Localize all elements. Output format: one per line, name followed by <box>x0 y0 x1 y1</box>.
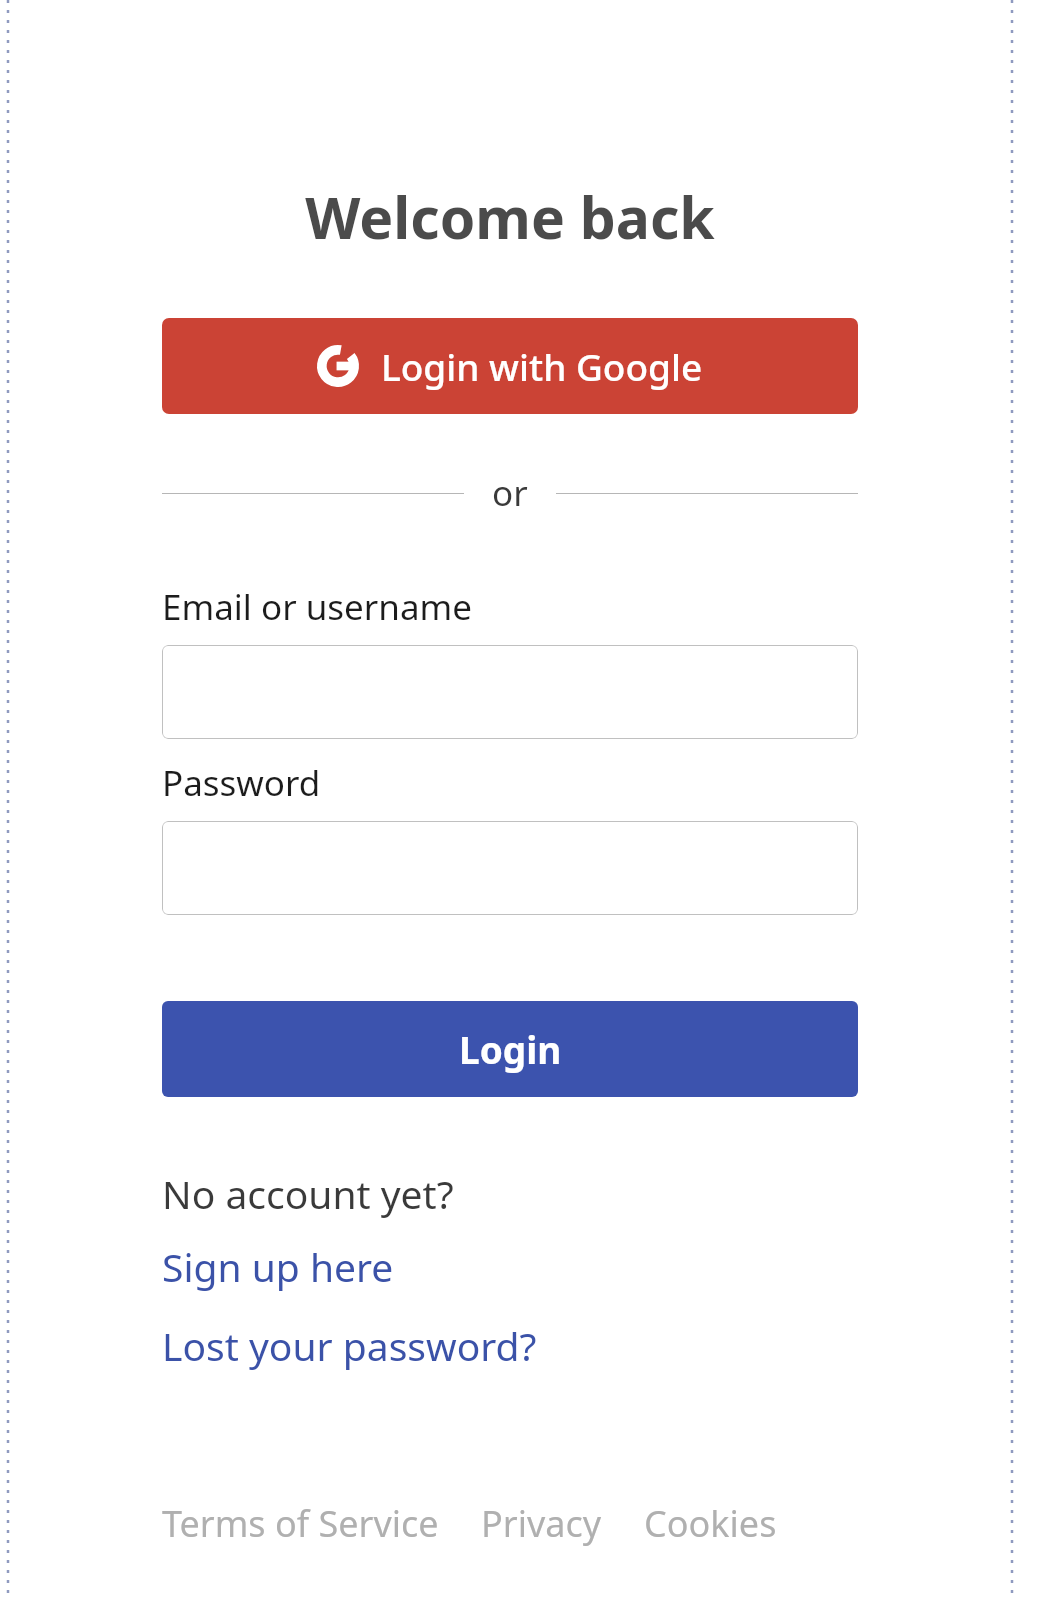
staticText: Email or username <box>162 583 473 631</box>
staticText: Login with Google <box>381 341 703 391</box>
staticText: Cookies <box>644 1499 777 1548</box>
button[interactable]: Lost your password? <box>162 1319 537 1372</box>
button[interactable]: Privacy <box>481 1499 602 1548</box>
staticText: Login <box>459 1024 562 1074</box>
other: Google <box>317 345 359 387</box>
staticText: Terms of Service <box>162 1499 439 1548</box>
button[interactable]: Terms of Service <box>162 1499 439 1548</box>
staticText: or <box>492 469 528 517</box>
staticText: Password <box>162 759 321 807</box>
button[interactable]: Login <box>162 1001 858 1097</box>
button[interactable]: Cookies <box>644 1499 777 1548</box>
staticText: Welcome back <box>162 178 858 256</box>
button[interactable]: Password <box>162 821 858 915</box>
button[interactable]: Google <box>162 318 858 414</box>
button[interactable]: Sign up here <box>162 1240 394 1293</box>
button[interactable]: Email or username <box>162 645 858 739</box>
staticText: Privacy <box>481 1499 602 1548</box>
staticText: No account yet? <box>162 1167 454 1220</box>
